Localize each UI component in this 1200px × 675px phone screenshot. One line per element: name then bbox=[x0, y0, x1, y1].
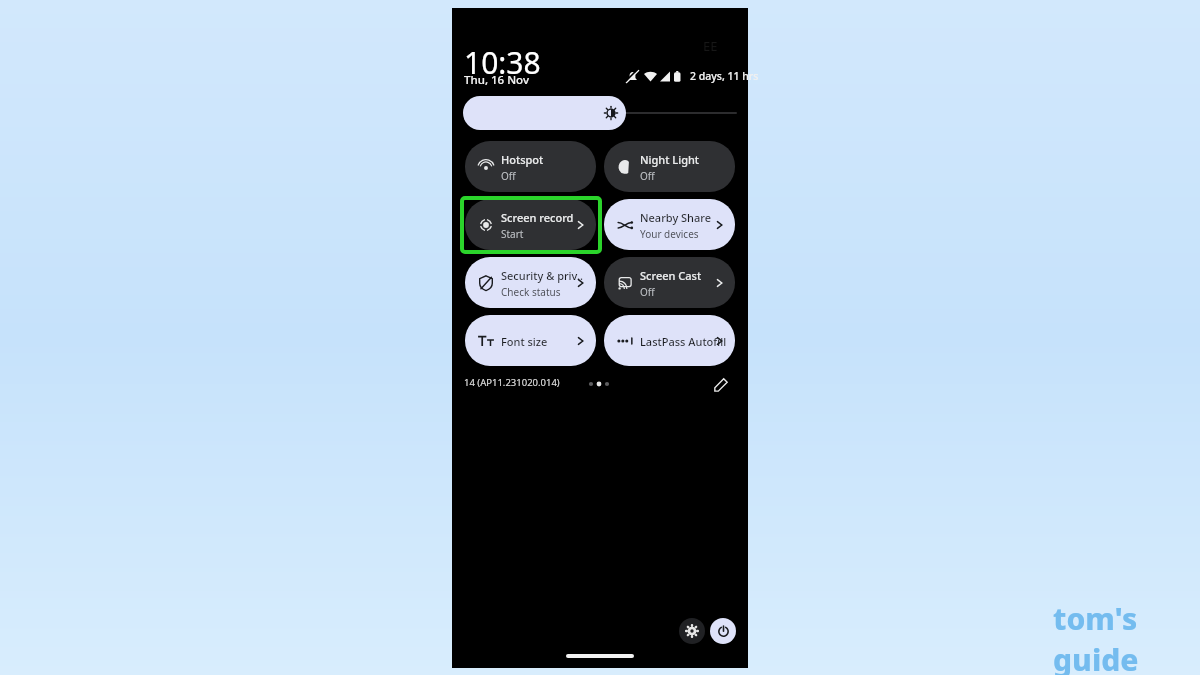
staticText: Screen record bbox=[501, 210, 574, 225]
staticText: Thu, 16 Nov bbox=[464, 72, 529, 88]
staticText: Off bbox=[501, 169, 516, 183]
button[interactable]: Font size bbox=[465, 315, 596, 366]
staticText: Font size bbox=[501, 334, 548, 349]
staticText: Hotspot bbox=[501, 152, 544, 167]
button[interactable]: Edit tiles bbox=[710, 374, 732, 396]
staticText: Start bbox=[501, 227, 524, 241]
staticText: Night Light bbox=[640, 152, 700, 167]
button[interactable]: Brightness bbox=[463, 96, 626, 130]
button[interactable]: Power bbox=[710, 618, 736, 644]
button[interactable]: LastPass Autofill bbox=[604, 315, 735, 366]
button[interactable]: Screen Cast bbox=[604, 257, 735, 308]
button[interactable]: Settings bbox=[679, 618, 705, 644]
staticText: tom's bbox=[1053, 598, 1138, 639]
staticText: Your devices bbox=[640, 227, 699, 241]
staticText: Off bbox=[640, 169, 655, 183]
button[interactable]: Security & priv.. bbox=[465, 257, 596, 308]
staticText: guide bbox=[1053, 639, 1139, 675]
staticText: 10:38 bbox=[464, 42, 541, 83]
staticText: 14 (AP11.231020.014) bbox=[464, 376, 560, 389]
staticText: 2 days, 11 hrs bbox=[690, 69, 759, 83]
button[interactable]: Screen record bbox=[465, 199, 596, 250]
staticText: Screen Cast bbox=[640, 268, 702, 283]
staticText: Off bbox=[640, 285, 655, 299]
staticText: EE bbox=[703, 37, 718, 55]
button[interactable]: Night Light bbox=[604, 141, 735, 192]
staticText: Security & priv.. bbox=[501, 268, 583, 283]
button[interactable]: Nearby Share bbox=[604, 199, 735, 250]
staticText: LastPass Autofill bbox=[640, 334, 727, 349]
staticText: Nearby Share bbox=[640, 210, 712, 225]
staticText: Check status bbox=[501, 285, 561, 299]
button[interactable]: Hotspot bbox=[465, 141, 596, 192]
